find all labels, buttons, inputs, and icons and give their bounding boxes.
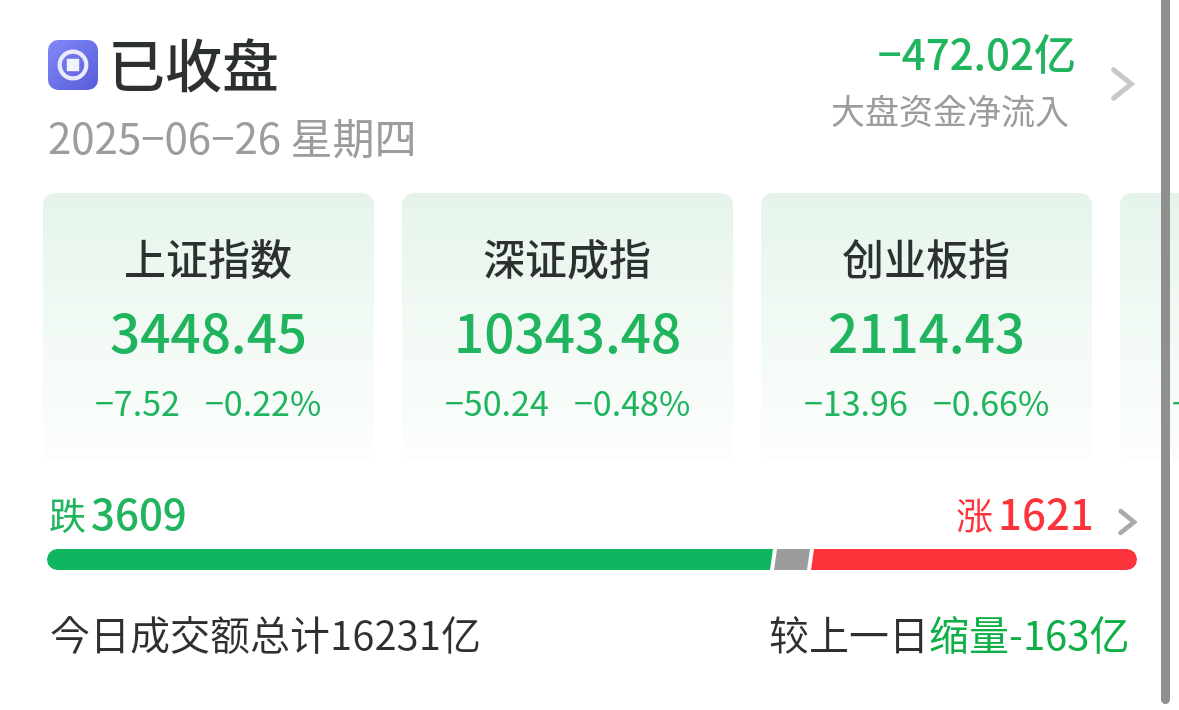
staticText: −50.24 bbox=[445, 377, 549, 426]
staticText: 今日成交额总计16231亿 bbox=[50, 604, 481, 662]
staticText: 创业板指 bbox=[842, 226, 1011, 287]
button[interactable]: 跌 bbox=[49, 481, 187, 542]
button[interactable]: 已收盘 bbox=[48, 32, 279, 115]
button[interactable]: 深证成指 bbox=[402, 193, 733, 461]
button[interactable]: 涨 bbox=[956, 481, 1126, 542]
staticText: −0.22% bbox=[205, 377, 322, 426]
staticText: 2025−06−26 星期四 bbox=[48, 105, 417, 166]
staticText: 涨 bbox=[956, 487, 993, 541]
staticText: −7.52 bbox=[95, 377, 180, 426]
staticText: 2114.43 bbox=[828, 292, 1026, 369]
staticText: 3609 bbox=[91, 481, 187, 542]
staticText: −13.96 bbox=[804, 377, 908, 426]
button[interactable]: 大盘资金净流入详情 bbox=[820, 20, 1141, 140]
staticText: 1621 bbox=[998, 481, 1094, 542]
staticText: −0.48% bbox=[574, 377, 691, 426]
button[interactable]: 科创50 bbox=[1120, 193, 1179, 461]
staticText: 上证指数 bbox=[124, 226, 293, 287]
staticText: 3448.45 bbox=[110, 292, 308, 369]
staticText: 跌 bbox=[49, 487, 86, 541]
staticText: 较上一日 bbox=[769, 604, 929, 662]
staticText: 已收盘 bbox=[108, 21, 279, 104]
button[interactable]: 创业板指 bbox=[761, 193, 1092, 461]
staticText: −0.66% bbox=[933, 377, 1050, 426]
staticText: 缩量-163亿 bbox=[929, 604, 1130, 662]
staticText: 深证成指 bbox=[483, 226, 652, 287]
staticText: 大盘资金净流入 bbox=[820, 85, 1069, 134]
staticText: 10343.48 bbox=[454, 292, 682, 369]
button[interactable]: 上证指数 bbox=[43, 193, 374, 461]
staticText: −472.02亿 bbox=[820, 21, 1076, 82]
staticText: −8.15 bbox=[1172, 377, 1179, 426]
